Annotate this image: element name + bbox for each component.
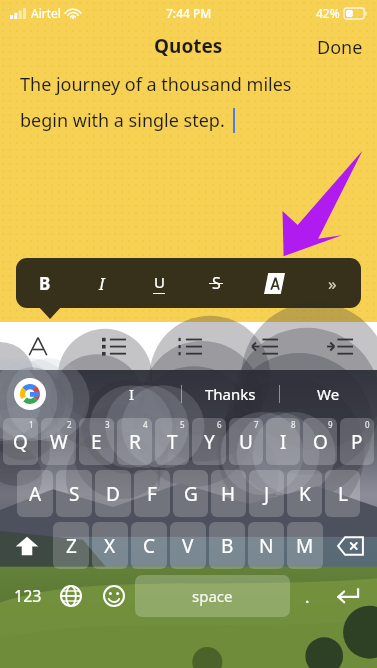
button[interactable]: Increase indent xyxy=(302,322,377,370)
button[interactable]: N xyxy=(248,522,284,569)
staticText: W xyxy=(50,429,68,455)
staticText: 9 xyxy=(328,419,333,430)
button[interactable]: O xyxy=(303,418,337,465)
button[interactable]: space xyxy=(135,575,290,617)
staticText: A xyxy=(29,481,42,507)
staticText: The journey of a thousand miles xyxy=(20,72,292,97)
staticText: 42% xyxy=(316,5,340,21)
button[interactable]: Bold xyxy=(16,258,73,308)
staticText: Airtel xyxy=(31,5,61,21)
staticText: K xyxy=(299,481,311,507)
button[interactable]: I xyxy=(266,418,300,465)
button[interactable]: A xyxy=(17,470,53,517)
button[interactable]: We xyxy=(280,370,377,418)
staticText: I xyxy=(129,384,135,404)
button[interactable]: Q xyxy=(3,418,38,465)
staticText: V xyxy=(182,533,194,559)
staticText: J xyxy=(264,481,270,507)
button[interactable]: Text format xyxy=(0,322,76,370)
button[interactable]: J xyxy=(249,470,284,517)
staticText: D xyxy=(106,481,120,507)
button[interactable]: Bulleted list xyxy=(76,322,152,370)
staticText: S xyxy=(212,272,221,294)
button[interactable]: S xyxy=(56,470,92,517)
button[interactable]: W xyxy=(41,418,76,465)
staticText: 2 xyxy=(67,419,72,430)
button[interactable]: E xyxy=(79,418,114,465)
staticText: 5 xyxy=(180,419,185,430)
button[interactable]: Italic xyxy=(73,258,130,308)
button[interactable]: I xyxy=(83,370,181,418)
staticText: 0 xyxy=(365,419,370,430)
button[interactable]: M xyxy=(287,522,323,569)
button[interactable]: P xyxy=(340,418,374,465)
staticText: G xyxy=(184,481,198,507)
button[interactable]: More options xyxy=(303,258,361,308)
staticText: U xyxy=(154,272,165,292)
staticText: Y xyxy=(204,429,215,455)
button[interactable]: 123 xyxy=(6,573,49,619)
button[interactable]: Backspace xyxy=(326,522,374,569)
staticText: X xyxy=(104,533,116,559)
staticText: We xyxy=(317,384,340,404)
staticText: 123 xyxy=(14,585,42,607)
staticText: begin with a single step. xyxy=(20,108,225,133)
staticText: P xyxy=(351,429,363,455)
staticText: » xyxy=(328,272,337,295)
button[interactable]: U xyxy=(229,418,263,465)
button[interactable]: . xyxy=(290,573,324,619)
staticText: T xyxy=(167,429,178,455)
staticText: 7:44 PM xyxy=(166,5,212,21)
button[interactable]: Z xyxy=(53,522,89,569)
staticText: L xyxy=(338,481,348,507)
button[interactable]: V xyxy=(170,522,206,569)
button[interactable]: Numbered list xyxy=(152,322,227,370)
button[interactable]: C xyxy=(131,522,167,569)
button[interactable]: L xyxy=(325,470,360,517)
button[interactable]: X xyxy=(92,522,128,569)
button[interactable]: Decrease indent xyxy=(227,322,302,370)
button[interactable]: F xyxy=(134,470,170,517)
staticText: M xyxy=(296,533,314,559)
staticText: Thanks xyxy=(205,384,256,404)
staticText: H xyxy=(221,481,236,507)
button[interactable]: Emoji xyxy=(92,573,135,619)
staticText: B xyxy=(221,533,234,559)
button[interactable]: Thanks xyxy=(182,370,279,418)
staticText: . xyxy=(305,585,310,608)
staticText: 4 xyxy=(143,419,148,430)
button[interactable]: K xyxy=(287,470,322,517)
button[interactable]: Y xyxy=(192,418,226,465)
button[interactable]: Shift xyxy=(3,522,50,569)
button[interactable]: D xyxy=(95,470,131,517)
staticText: U xyxy=(239,429,253,455)
staticText: C xyxy=(143,533,156,559)
button[interactable]: G xyxy=(173,470,208,517)
staticText: Z xyxy=(66,533,77,559)
button[interactable]: Underline xyxy=(130,258,187,308)
staticText: space xyxy=(192,586,233,606)
staticText: 1 xyxy=(29,419,34,430)
staticText: Done xyxy=(317,35,363,57)
button[interactable]: Change keyboard language xyxy=(49,573,92,619)
button[interactable]: T xyxy=(155,418,189,465)
staticText: Q xyxy=(13,429,28,455)
staticText: 6 xyxy=(217,419,222,430)
staticText: 3 xyxy=(105,419,110,430)
button[interactable]: Done xyxy=(303,30,377,62)
staticText: N xyxy=(259,533,274,559)
button[interactable]: Enter xyxy=(324,573,371,619)
button[interactable]: Google Assistant xyxy=(14,378,46,410)
staticText: 7 xyxy=(254,419,259,430)
button[interactable]: H xyxy=(211,470,246,517)
button[interactable]: R xyxy=(117,418,152,465)
staticText: S xyxy=(69,481,80,507)
staticText: R xyxy=(129,429,141,455)
button[interactable]: Text style xyxy=(245,258,303,308)
button[interactable]: B xyxy=(209,522,245,569)
staticText: 8 xyxy=(291,419,296,430)
button[interactable]: Strikethrough xyxy=(187,258,245,308)
staticText: O xyxy=(313,429,328,455)
staticText: E xyxy=(91,429,102,455)
staticText: F xyxy=(147,481,157,507)
